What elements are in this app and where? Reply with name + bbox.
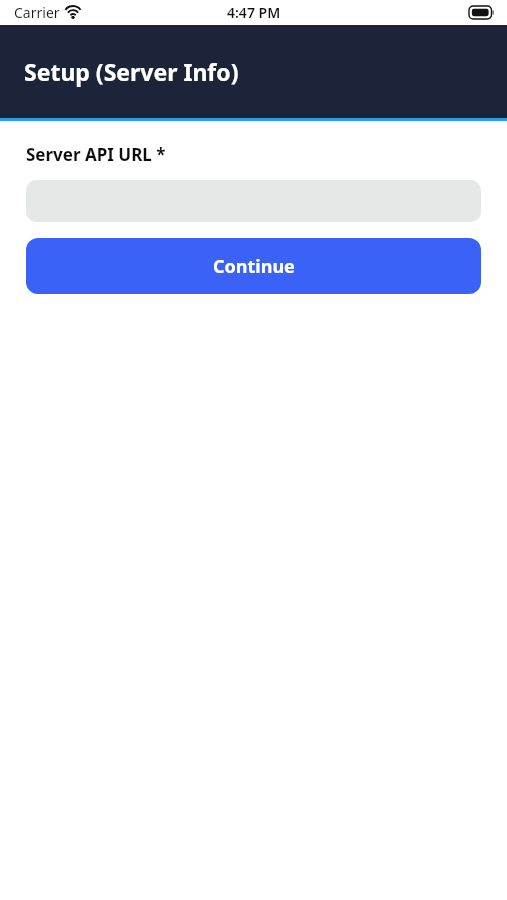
staticText: Server API URL *: [26, 143, 166, 166]
staticText: Setup (Server Info): [24, 56, 239, 87]
staticText: 4:47 PM: [227, 3, 281, 22]
staticText: Carrier: [14, 3, 60, 22]
button[interactable]: Continue: [26, 238, 481, 294]
staticText: Continue: [213, 254, 295, 279]
